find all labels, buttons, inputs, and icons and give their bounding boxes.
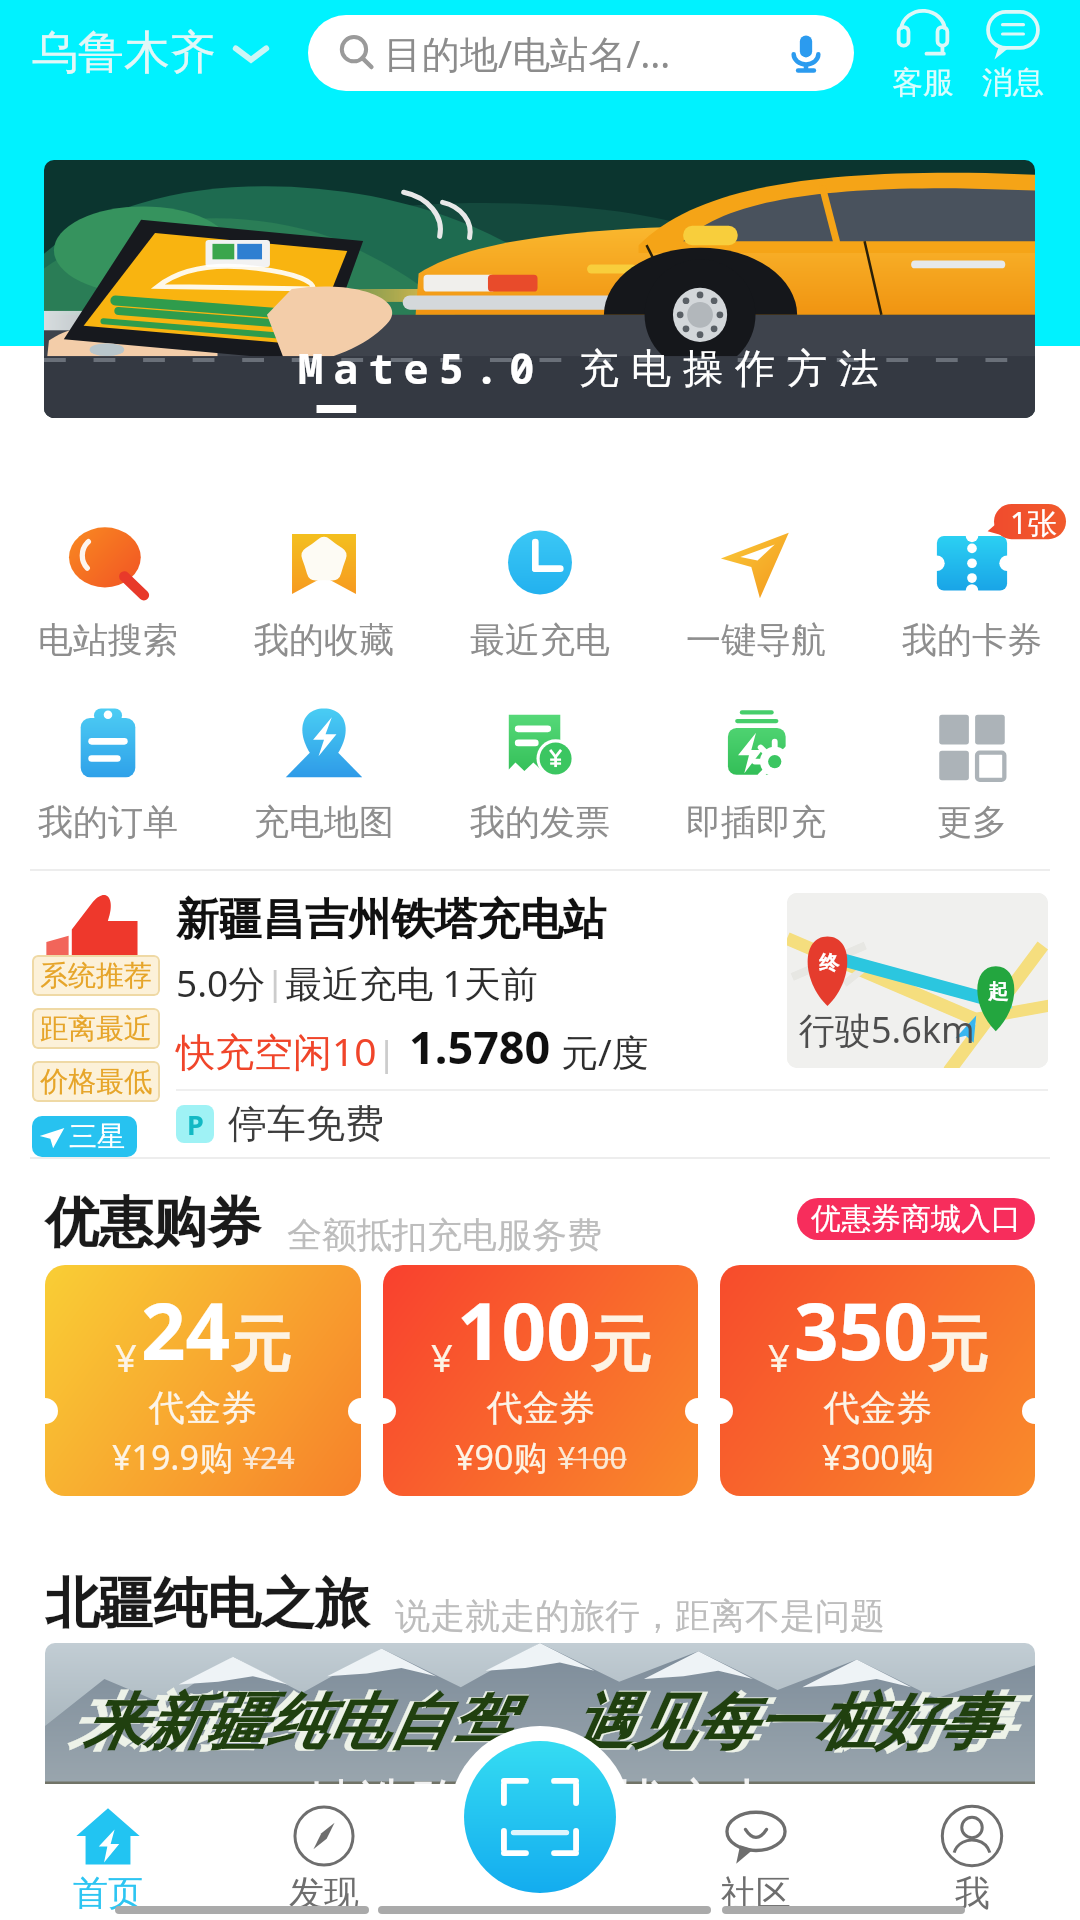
staticText: P (187, 1106, 204, 1143)
staticText: 目的地/电站名/… (384, 27, 671, 79)
staticText: 1张 (1010, 502, 1058, 543)
button[interactable]: 更多 (864, 706, 1080, 844)
button[interactable]: 系统推荐 (0, 871, 1080, 1157)
button[interactable]: 社区 (648, 1803, 864, 1915)
staticText: ¥24 (243, 1437, 295, 1478)
staticText: 行驶5.6km (799, 1005, 975, 1054)
staticText: 代金券 (149, 1385, 257, 1430)
button[interactable]: 即插即充 (648, 706, 864, 844)
button[interactable]: 我的收藏 (216, 524, 432, 662)
staticText: 即插即充 (686, 800, 826, 844)
staticText: 1.5780 (409, 1016, 551, 1077)
staticText: 说走就走的旅行，距离不是问题 (395, 1594, 885, 1638)
staticText: 元 (928, 1307, 988, 1383)
staticText: 最近充电 1天前 (285, 957, 538, 1008)
staticText: ¥100 (558, 1437, 627, 1478)
button[interactable]: 目的地/电站名/… (308, 15, 854, 91)
staticText: 电站搜索 (38, 618, 178, 662)
button[interactable]: ¥ (720, 1265, 1035, 1496)
button[interactable]: 首页 (0, 1803, 216, 1915)
button[interactable]: 我的订单 (0, 706, 216, 844)
staticText: 元 (231, 1307, 291, 1383)
button[interactable]: 一键导航 (648, 524, 864, 662)
staticText: 客服 (892, 63, 954, 102)
staticText: 来新疆纯电自驾，遇见每一桩好事 (83, 1684, 998, 1761)
staticText: 全额抵扣充电服务费 (287, 1213, 602, 1257)
staticText: 24 (141, 1277, 231, 1383)
staticText: ¥ (768, 1331, 790, 1383)
button[interactable]: 1张 (864, 524, 1080, 662)
staticText: 起 (988, 979, 1008, 1004)
button[interactable]: ¥ (383, 1265, 698, 1496)
staticText: ¥ (115, 1331, 137, 1383)
staticText: 我 (955, 1871, 990, 1915)
staticText: 停车免费 (228, 1099, 384, 1148)
staticText: 最近充电 (470, 618, 610, 662)
staticText: 快充空闲10 (176, 1024, 377, 1077)
staticText: 我的收藏 (254, 618, 394, 662)
staticText: 三星 (69, 1119, 125, 1154)
button[interactable]: Mate5.0 (44, 160, 1035, 418)
button[interactable]: 我 (864, 1803, 1080, 1915)
staticText: 来新疆纯电自驾，遇见每一桩好事 (68, 1683, 1013, 1762)
staticText: | (266, 960, 285, 1005)
staticText: 优惠购券 (45, 1189, 261, 1257)
button[interactable]: 客服 (890, 5, 956, 102)
staticText: 更多 (937, 800, 1007, 844)
staticText: 元/度 (561, 1026, 649, 1077)
button[interactable]: 优惠券商城入口 (797, 1198, 1035, 1240)
staticText: | (377, 1029, 397, 1077)
staticText: 充电操作方法 (573, 343, 885, 393)
staticText: 元 (591, 1307, 651, 1383)
staticText: 100 (457, 1277, 591, 1383)
button[interactable]: ¥ (45, 1265, 361, 1496)
button[interactable]: 充电地图 (216, 706, 432, 844)
button[interactable]: 消息 (980, 5, 1046, 102)
staticText: 乌鲁木齐 (32, 24, 216, 82)
button[interactable]: 三星 (32, 1116, 137, 1157)
staticText: Mate5.0 (298, 339, 545, 396)
staticText: ¥300购 (822, 1434, 934, 1480)
staticText: 距离最近 (40, 1011, 152, 1046)
staticText: 新疆昌吉州铁塔充电站 (176, 893, 606, 947)
button[interactable]: 扫一扫 (464, 1741, 616, 1893)
staticText: 我的卡券 (902, 618, 1042, 662)
button[interactable]: 地图 (787, 893, 1048, 1068)
staticText: 终 (819, 951, 839, 976)
button[interactable]: 来新疆纯电自驾，遇见每一桩好事 (45, 1643, 1035, 1920)
staticText: 代金券 (487, 1385, 595, 1430)
staticText: 5.0分 (176, 957, 266, 1008)
staticText: 社区 (721, 1871, 791, 1915)
staticText: 我的订单 (38, 800, 178, 844)
staticText: 消息 (982, 63, 1044, 102)
staticText: 我的发票 (470, 800, 610, 844)
staticText: 充电地图 (254, 800, 394, 844)
button[interactable]: 电站搜索 (0, 524, 216, 662)
button[interactable]: 我的发票 (432, 706, 648, 844)
staticText: 代金券 (824, 1385, 932, 1430)
staticText: 一键导航 (686, 618, 826, 662)
staticText: 优惠券商城入口 (811, 1200, 1021, 1238)
staticText: 价格最低 (40, 1064, 152, 1099)
staticText: 精选路线 无忧充电 (303, 1765, 778, 1839)
button[interactable]: 发现 (216, 1803, 432, 1915)
staticText: ¥ (431, 1331, 453, 1383)
button[interactable]: 乌鲁木齐 (0, 18, 276, 88)
staticText: ¥90购 (455, 1434, 548, 1480)
staticText: 首页 (73, 1871, 143, 1915)
staticText: 北疆纯电之旅 (45, 1570, 369, 1638)
staticText: 系统推荐 (40, 958, 152, 993)
staticText: 350 (794, 1277, 928, 1383)
staticText: 发现 (289, 1871, 359, 1915)
staticText: ¥19.9购 (112, 1434, 233, 1480)
button[interactable]: 最近充电 (432, 524, 648, 662)
